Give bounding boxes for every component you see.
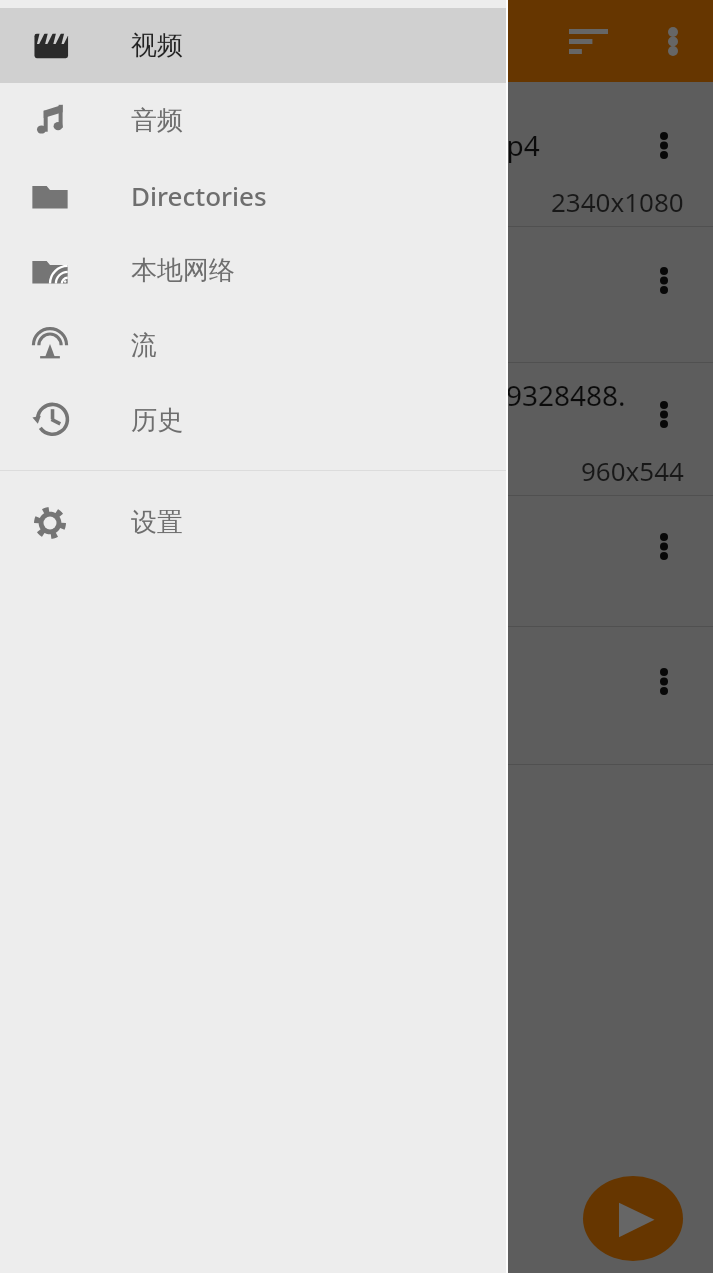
button[interactable]: More: [615, 643, 713, 719]
staticText: 历史: [131, 404, 183, 437]
button[interactable]: 流: [0, 308, 508, 383]
button[interactable]: 视频: [0, 8, 508, 83]
staticText: video_1699328488.: [374, 376, 626, 414]
staticText: 设置: [131, 506, 183, 539]
button[interactable]: More: [0, 496, 713, 627]
button[interactable]: 历史: [0, 383, 508, 458]
button[interactable]: VID_20230115_104523.mp4: [0, 82, 713, 227]
staticText: Directories: [131, 178, 267, 213]
button[interactable]: More: [0, 627, 713, 765]
button[interactable]: More options: [632, 0, 713, 82]
button[interactable]: 音频: [0, 83, 508, 158]
button[interactable]: video_1699328488.: [0, 363, 713, 496]
staticText: 2340x1080: [551, 184, 684, 219]
button[interactable]: 本地网络: [0, 233, 508, 308]
button[interactable]: Play: [583, 1176, 683, 1261]
button[interactable]: Directories: [0, 158, 508, 233]
button[interactable]: Sort: [545, 0, 632, 82]
staticText: 视频: [131, 29, 183, 62]
staticText: 本地网络: [131, 254, 235, 287]
button[interactable]: More: [0, 227, 713, 363]
staticText: VID_20230115_104523.mp4: [177, 126, 540, 164]
button[interactable]: More: [615, 107, 713, 183]
button[interactable]: 设置: [0, 485, 508, 560]
staticText: 流: [131, 329, 157, 362]
button[interactable]: More: [615, 376, 713, 452]
button[interactable]: More: [615, 242, 713, 318]
staticText: 音频: [131, 104, 183, 137]
staticText: 960x544: [581, 453, 684, 488]
button[interactable]: More: [615, 508, 713, 584]
